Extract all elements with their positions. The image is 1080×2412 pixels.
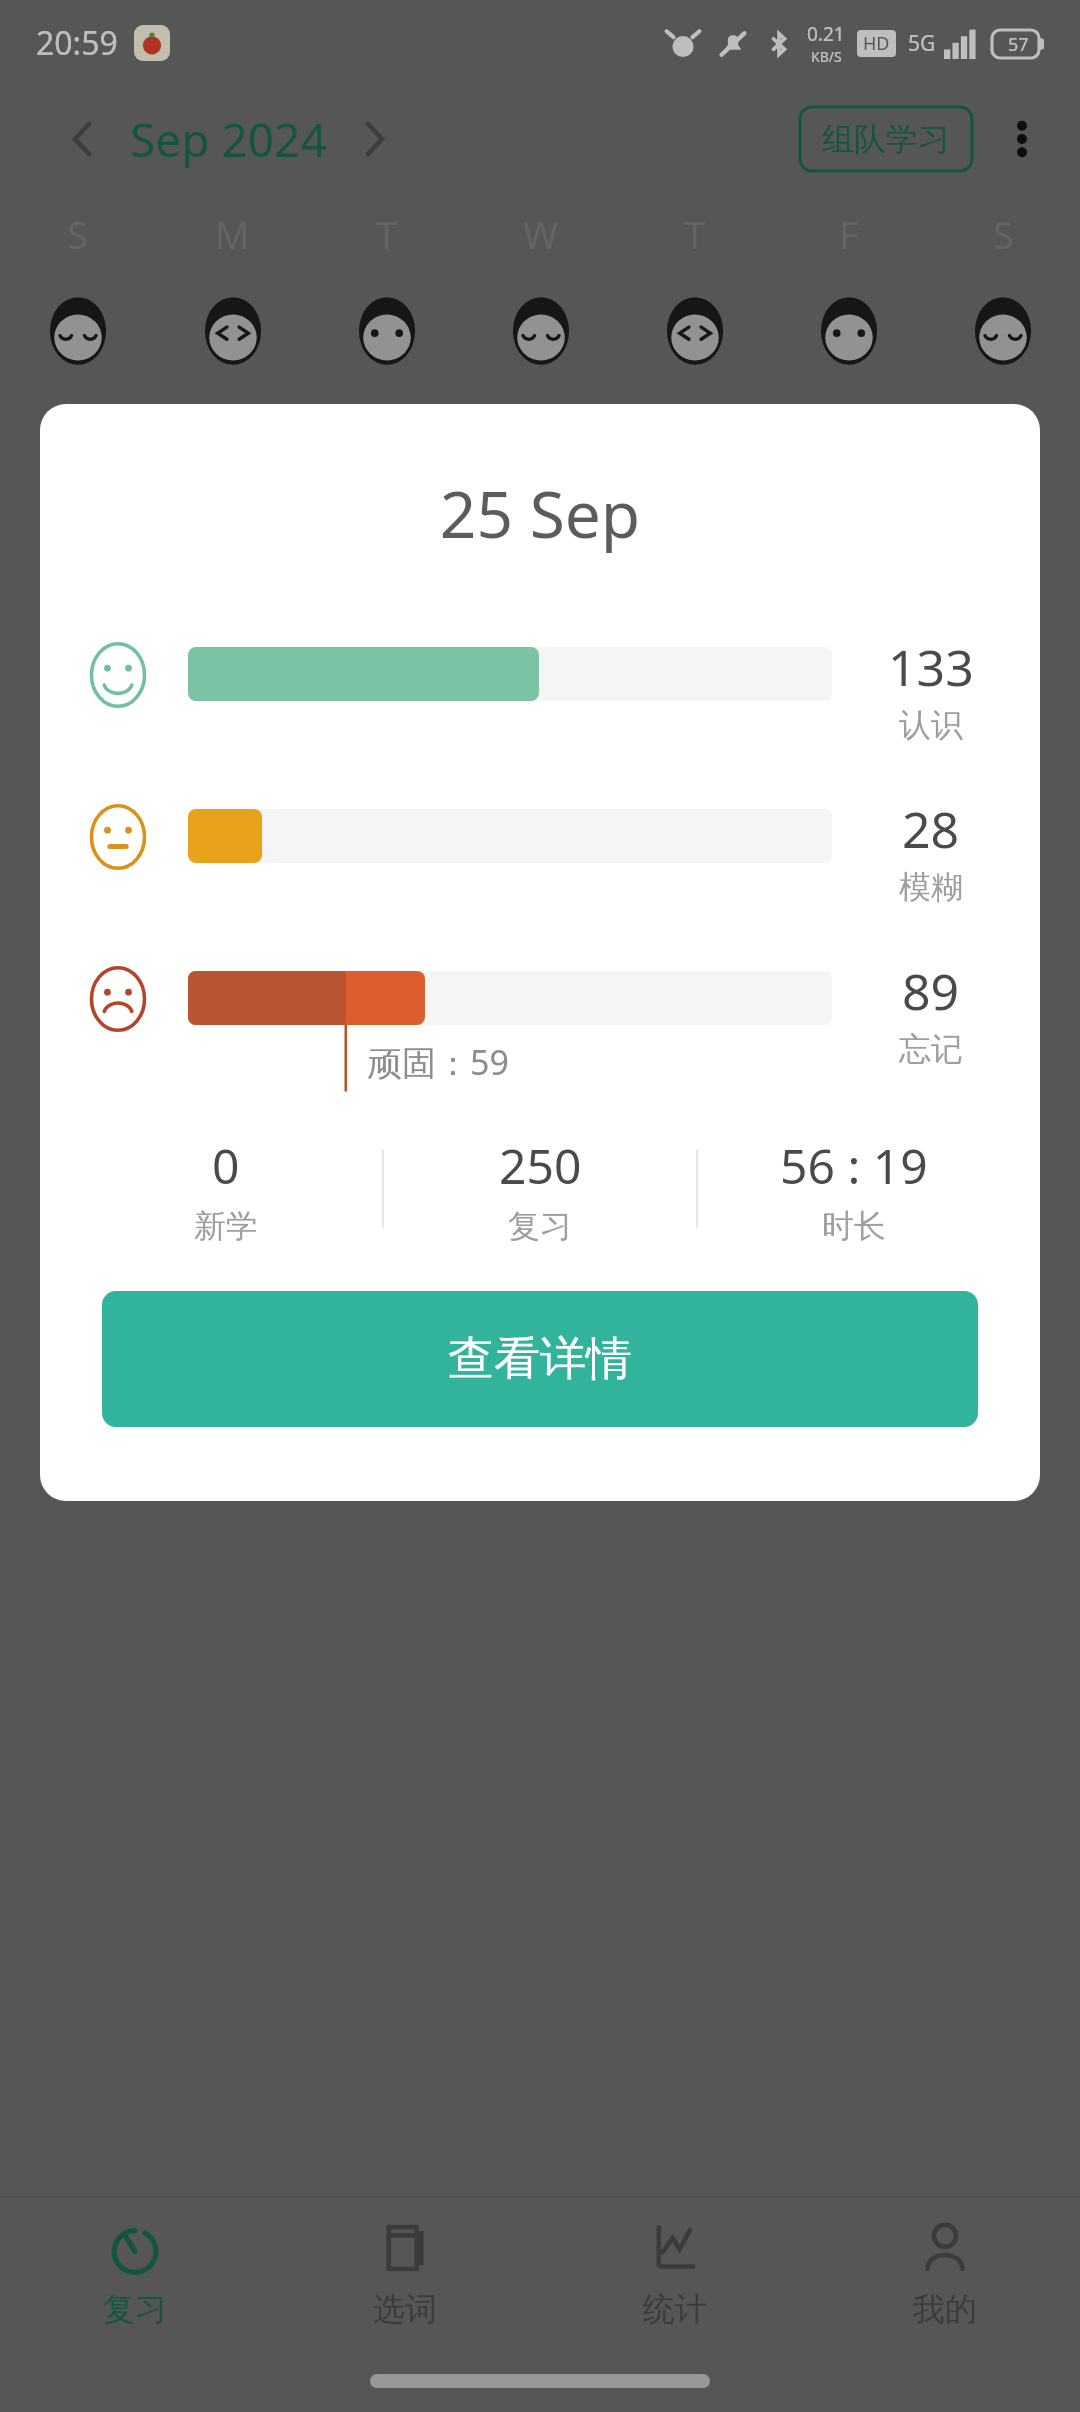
staticText: 0.21: [807, 21, 845, 47]
staticText: KB/S: [811, 47, 842, 66]
staticText: 忘记: [899, 1029, 963, 1069]
button[interactable]: 选词: [270, 2198, 540, 2350]
button[interactable]: More options: [990, 107, 1054, 171]
staticText: 公告栏 | 你的UID：31353020: [62, 835, 547, 884]
staticText: 20:59: [36, 21, 118, 65]
staticText: 0: [212, 1133, 240, 1198]
button[interactable]: 28: [84, 795, 1004, 907]
button[interactable]: Previous month: [48, 105, 116, 173]
staticText: F: [839, 208, 859, 260]
staticText: 5G: [908, 29, 936, 58]
staticText: 133: [888, 633, 974, 701]
staticText: S: [993, 208, 1014, 260]
staticText: 复习: [508, 1206, 572, 1246]
button[interactable]: 顽固：59: [84, 957, 1004, 1095]
staticText: 250: [499, 1133, 582, 1198]
button[interactable]: 133: [84, 633, 1004, 745]
button[interactable]: 查看详情: [102, 1291, 978, 1427]
staticText: M: [215, 208, 250, 260]
staticText: 模糊: [899, 867, 963, 907]
staticText: Sep 2024: [130, 108, 327, 171]
button[interactable]: 统计: [540, 2198, 810, 2350]
staticText: 我的: [913, 2289, 977, 2329]
button[interactable]: 56 : 19: [698, 1131, 1010, 1247]
staticText: 复习: [103, 2289, 167, 2329]
button[interactable]: 复习: [0, 2198, 270, 2350]
staticText: 分享好友，马上领 4800 单词上限。: [214, 1068, 825, 1120]
staticText: 57: [1008, 32, 1029, 57]
staticText: 组队学习: [822, 119, 950, 159]
staticText: 认识: [899, 705, 963, 745]
staticText: 时长: [822, 1206, 886, 1246]
staticText: 选词: [373, 2289, 437, 2329]
button[interactable]: 250: [384, 1131, 696, 1247]
staticText: 56 : 19: [780, 1133, 928, 1198]
staticText: 顽固：59: [368, 1039, 509, 1085]
staticText: S: [67, 208, 88, 260]
staticText: HD: [863, 31, 890, 56]
staticText: W: [523, 208, 559, 260]
button[interactable]: 我的: [810, 2198, 1080, 2350]
button[interactable]: 组队学习: [800, 107, 972, 171]
staticText: T: [684, 208, 706, 260]
staticText: T: [376, 208, 398, 260]
staticText: 28: [902, 795, 960, 863]
button[interactable]: 0: [70, 1131, 382, 1247]
staticText: 89: [902, 957, 960, 1025]
staticText: 25 Sep: [40, 470, 1040, 557]
staticText: 统计: [643, 2289, 707, 2329]
button[interactable]: Next month: [341, 105, 409, 173]
staticText: 查看详情: [448, 1330, 632, 1388]
staticText: 新学: [194, 1206, 258, 1246]
staticText: 获奖励: [62, 980, 182, 1030]
